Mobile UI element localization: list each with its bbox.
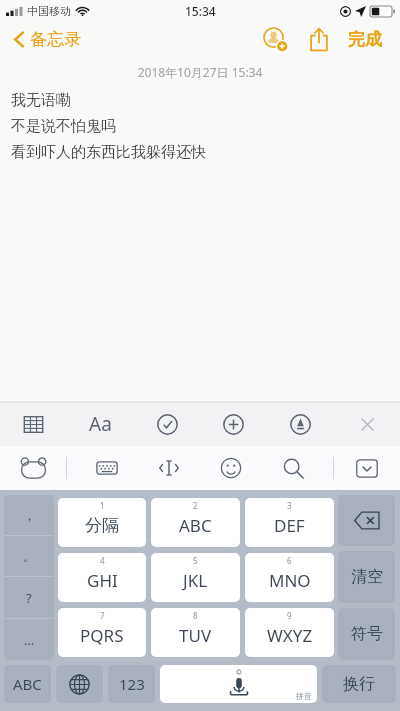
- staticText: WXYZ: [267, 624, 313, 647]
- staticText: ABC: [179, 514, 212, 537]
- button[interactable]: Add attachment: [214, 405, 252, 443]
- button[interactable]: 7: [58, 608, 146, 657]
- staticText: ，: [23, 507, 36, 523]
- button[interactable]: Markup: [281, 405, 319, 443]
- button[interactable]: 123: [108, 665, 155, 703]
- button[interactable]: Hide keyboard: [334, 446, 400, 490]
- staticText: 7: [100, 610, 105, 621]
- button[interactable]: Table: [14, 405, 52, 443]
- staticText: 符号: [351, 624, 383, 644]
- staticText: 我无语嘞: [11, 91, 71, 110]
- staticText: …: [24, 631, 35, 649]
- staticText: 123: [119, 674, 145, 694]
- button[interactable]: Keyboard settings: [85, 446, 129, 490]
- staticText: 不是说不怕鬼吗: [11, 117, 116, 136]
- button[interactable]: Delete: [338, 495, 395, 546]
- button[interactable]: Text format: [81, 405, 119, 443]
- button[interactable]: Search: [271, 446, 315, 490]
- staticText: PQRS: [80, 624, 124, 647]
- button[interactable]: 1: [58, 498, 146, 547]
- staticText: 。: [23, 548, 36, 564]
- button[interactable]: ，: [4, 495, 54, 660]
- button[interactable]: 4: [58, 553, 146, 602]
- staticText: 换行: [343, 674, 375, 694]
- staticText: 15:34: [185, 3, 216, 19]
- button[interactable]: 备忘录: [10, 25, 85, 54]
- staticText: 5: [193, 555, 198, 566]
- staticText: 完成: [348, 29, 382, 50]
- staticText: ABC: [13, 674, 42, 694]
- staticText: JKL: [183, 569, 208, 592]
- button[interactable]: Close keyboard: [348, 405, 386, 443]
- staticText: Aa: [89, 411, 112, 437]
- button[interactable]: Switch language: [56, 665, 103, 703]
- button[interactable]: 完成: [344, 23, 386, 56]
- staticText: GHI: [87, 569, 118, 592]
- staticText: 6: [287, 555, 292, 566]
- button[interactable]: 3: [245, 498, 334, 547]
- staticText: 备忘录: [30, 29, 81, 50]
- button[interactable]: Baidu input: [0, 446, 66, 490]
- button[interactable]: Emoji: [209, 446, 253, 490]
- staticText: 1: [100, 500, 105, 511]
- staticText: 2: [193, 500, 198, 511]
- button[interactable]: 清空: [338, 551, 395, 603]
- staticText: 4: [100, 555, 105, 566]
- button[interactable]: 2: [151, 498, 240, 547]
- staticText: 9: [287, 610, 292, 621]
- staticText: ?: [26, 589, 32, 607]
- button[interactable]: ABC: [4, 665, 51, 703]
- button[interactable]: Space, voice input: [160, 665, 317, 703]
- staticText: TUV: [179, 624, 212, 647]
- button[interactable]: Add people: [258, 22, 292, 56]
- staticText: 看到吓人的东西比我躲得还快: [11, 143, 206, 162]
- button[interactable]: 8: [151, 608, 240, 657]
- button[interactable]: 5: [151, 553, 240, 602]
- staticText: 3: [287, 500, 292, 511]
- button[interactable]: 换行: [322, 665, 396, 703]
- staticText: DEF: [274, 514, 305, 537]
- staticText: MNO: [269, 569, 311, 592]
- staticText: 拼音: [296, 691, 312, 701]
- button[interactable]: 6: [245, 553, 334, 602]
- button[interactable]: 9: [245, 608, 334, 657]
- button[interactable]: 符号: [338, 608, 395, 660]
- staticText: 中国移动: [27, 4, 71, 18]
- staticText: 8: [193, 610, 198, 621]
- button[interactable]: Move cursor: [147, 446, 191, 490]
- staticText: 分隔: [85, 515, 119, 536]
- button[interactable]: Checklist: [148, 405, 186, 443]
- button[interactable]: Share: [302, 22, 336, 56]
- staticText: 清空: [351, 567, 383, 587]
- staticText: 2018年10月27日 15:34: [0, 64, 400, 80]
